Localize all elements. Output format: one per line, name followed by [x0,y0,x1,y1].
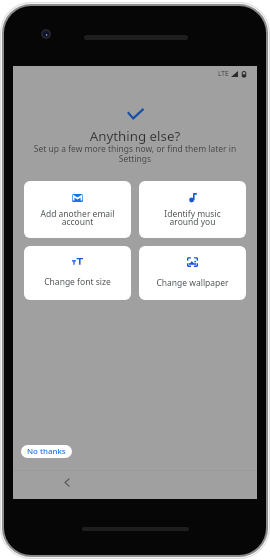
staticText: Add another email [24,208,131,220]
button[interactable]: No thanks [21,445,72,458]
button[interactable]: Change font size [24,246,131,300]
staticText: Change wallpaper [139,277,246,289]
staticText: around you [139,216,246,228]
staticText: Identify music [139,208,246,220]
staticText: account [24,216,131,228]
button[interactable]: Back [58,473,76,491]
staticText: Anything else? [13,127,257,145]
button[interactable]: Identify music [139,181,246,238]
button[interactable]: Add another email [24,181,131,238]
button[interactable]: Change wallpaper [139,246,246,300]
staticText: No thanks [27,446,66,457]
staticText: LTE [218,69,229,78]
staticText: Set up a few more things now, or find th… [27,143,243,165]
staticText: Change font size [24,276,131,288]
